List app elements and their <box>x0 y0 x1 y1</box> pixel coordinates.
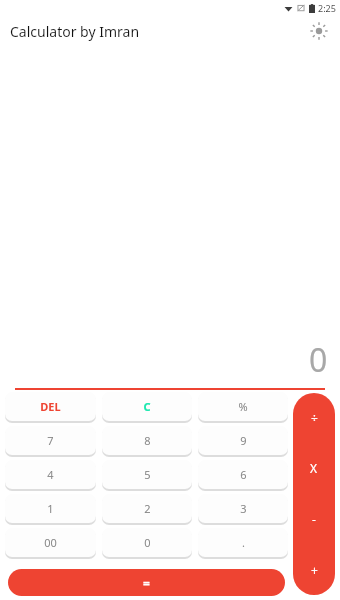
staticText: 1 <box>47 501 54 516</box>
staticText: % <box>238 399 248 414</box>
button[interactable]: = <box>8 569 285 596</box>
button[interactable]: DEL <box>5 392 96 421</box>
button[interactable]: 4 <box>5 460 96 489</box>
button[interactable]: 1 <box>5 494 96 523</box>
staticText: 8 <box>144 433 151 448</box>
staticText: 6 <box>240 467 247 482</box>
staticText: = <box>143 575 150 591</box>
button[interactable]: 5 <box>102 460 192 489</box>
staticText: 00 <box>44 535 57 550</box>
staticText: 2 <box>144 501 151 516</box>
staticText: DEL <box>40 399 61 414</box>
button[interactable]: Toggle theme <box>308 20 330 42</box>
button[interactable]: C <box>102 392 192 421</box>
staticText: - <box>312 511 316 527</box>
button[interactable]: 9 <box>198 426 288 455</box>
staticText: 0 <box>309 338 328 382</box>
button[interactable]: ÷ <box>293 393 335 443</box>
staticText: 9 <box>240 433 247 448</box>
button[interactable]: X <box>293 443 335 493</box>
staticText: 5 <box>144 467 151 482</box>
staticText: X <box>310 460 318 476</box>
staticText: ÷ <box>311 410 318 426</box>
button[interactable]: 2 <box>102 494 192 523</box>
staticText: . <box>242 535 245 550</box>
button[interactable]: - <box>293 493 335 544</box>
staticText: + <box>311 562 318 578</box>
staticText: 0 <box>144 535 151 550</box>
button[interactable]: 0 <box>102 528 192 557</box>
button[interactable]: 3 <box>198 494 288 523</box>
button[interactable]: % <box>198 392 288 421</box>
staticText: 4 <box>47 467 54 482</box>
button[interactable]: 00 <box>5 528 96 557</box>
button[interactable]: 6 <box>198 460 288 489</box>
button[interactable]: + <box>293 544 335 595</box>
staticText: 3 <box>240 501 247 516</box>
staticText: 7 <box>47 433 54 448</box>
staticText: C <box>143 399 151 414</box>
button[interactable]: . <box>198 528 288 557</box>
staticText: Calculator by Imran <box>10 22 140 41</box>
staticText: 2:25 <box>318 2 336 14</box>
button[interactable]: 7 <box>5 426 96 455</box>
button[interactable]: 8 <box>102 426 192 455</box>
